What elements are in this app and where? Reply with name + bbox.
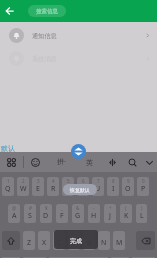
button[interactable]: 5: [62, 177, 74, 196]
staticText: 9: [127, 178, 130, 184]
button[interactable]: 9: [122, 177, 134, 196]
staticText: ¥: [45, 205, 48, 211]
button[interactable]: 4: [47, 177, 59, 196]
staticText: X: [42, 238, 47, 248]
button[interactable]: #: [24, 204, 36, 223]
button[interactable]: _: [56, 204, 68, 223]
button[interactable]: ¥: [40, 204, 52, 223]
button[interactable]: Voice input: [102, 152, 122, 172]
staticText: ): [141, 205, 143, 211]
staticText: 7: [97, 178, 100, 184]
staticText: _: [61, 205, 63, 211]
staticText: -: [93, 205, 95, 211]
staticText: Z: [27, 238, 32, 248]
button[interactable]: 通知信息: [0, 24, 157, 47]
staticText: #: [29, 205, 32, 211]
button[interactable]: 3: [32, 177, 44, 196]
staticText: 0: [142, 178, 145, 184]
button[interactable]: 英: [76, 152, 102, 172]
staticText: +: [109, 205, 112, 211]
button[interactable]: Move handle: [71, 144, 86, 159]
button[interactable]: -: [88, 204, 100, 223]
staticText: F: [60, 211, 64, 221]
button[interactable]: ): [136, 204, 147, 223]
staticText: E: [36, 184, 40, 194]
button[interactable]: 1: [2, 177, 14, 196]
button[interactable]: (: [120, 204, 132, 223]
staticText: N: [101, 238, 107, 248]
staticText: 3: [37, 178, 40, 184]
button[interactable]: 6: [77, 177, 89, 196]
button[interactable]: &: [72, 204, 84, 223]
staticText: I: [112, 184, 115, 194]
staticText: 1: [7, 178, 10, 184]
staticText: 6: [82, 178, 85, 184]
staticText: G: [75, 211, 81, 221]
staticText: L: [140, 211, 144, 221]
button[interactable]: 7: [92, 177, 104, 196]
button[interactable]: 完成: [54, 230, 98, 249]
button[interactable]: 0: [137, 177, 149, 196]
staticText: 通知信息: [32, 32, 57, 40]
button[interactable]: 恢复默认: [63, 184, 97, 195]
button[interactable]: 8: [107, 177, 119, 196]
button[interactable]: Search: [122, 152, 142, 172]
staticText: A: [12, 211, 17, 221]
button[interactable]: +: [104, 204, 116, 223]
button[interactable]: Shift: [2, 231, 20, 250]
button[interactable]: N: [98, 231, 110, 250]
staticText: &: [76, 205, 80, 211]
button[interactable]: 拼·: [46, 152, 76, 172]
staticText: 4: [52, 178, 55, 184]
staticText: 8: [112, 178, 115, 184]
staticText: S: [28, 211, 32, 221]
staticText: V: [72, 238, 77, 248]
staticText: M: [116, 238, 123, 248]
button[interactable]: 搜索信息: [28, 5, 66, 17]
staticText: 搜索信息: [36, 8, 58, 15]
staticText: Y: [81, 184, 85, 194]
button[interactable]: 2: [17, 177, 29, 196]
staticText: 5: [67, 178, 70, 184]
button[interactable]: Back: [2, 3, 18, 19]
button[interactable]: Z: [23, 231, 35, 250]
staticText: 恢复默认: [70, 187, 90, 193]
staticText: 2: [22, 178, 25, 184]
button[interactable]: B: [83, 231, 95, 250]
staticText: U: [95, 184, 101, 194]
staticText: 完成: [70, 237, 82, 245]
staticText: @: [12, 205, 17, 211]
staticText: 拼·: [57, 157, 66, 167]
staticText: H: [91, 211, 97, 221]
staticText: (: [125, 205, 127, 211]
button[interactable]: V: [68, 231, 80, 250]
button[interactable]: @: [8, 204, 20, 223]
staticText: W: [20, 184, 27, 194]
staticText: 默认: [1, 144, 15, 153]
staticText: R: [51, 184, 56, 194]
button[interactable]: C: [53, 231, 65, 250]
staticText: 英: [86, 158, 93, 167]
button[interactable]: Hide keyboard: [142, 152, 157, 172]
staticText: D: [43, 211, 49, 221]
staticText: T: [66, 184, 70, 194]
button[interactable]: Backspace: [136, 231, 155, 250]
staticText: O: [125, 184, 131, 194]
staticText: P: [141, 184, 146, 194]
staticText: Q: [5, 184, 11, 194]
staticText: K: [124, 211, 129, 221]
button[interactable]: Emoji: [24, 152, 46, 172]
staticText: 系统消息: [32, 55, 57, 63]
button[interactable]: Keyboard layouts: [0, 152, 23, 172]
button[interactable]: X: [38, 231, 50, 250]
staticText: J: [109, 211, 111, 221]
button[interactable]: M: [113, 231, 125, 250]
